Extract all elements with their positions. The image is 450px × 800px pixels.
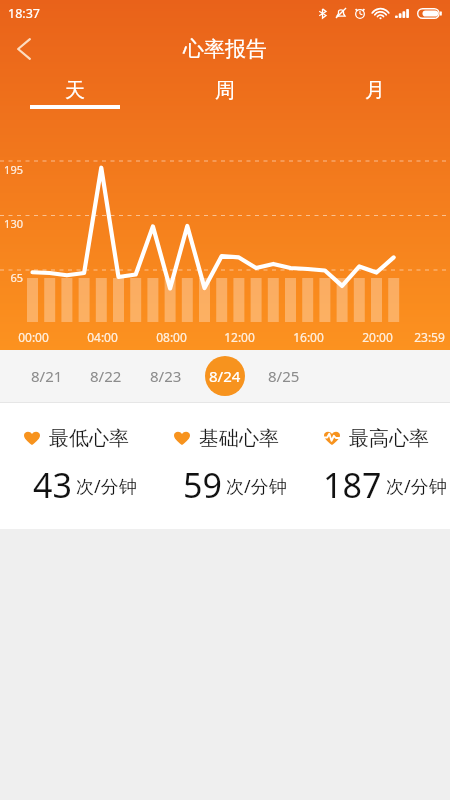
staticText: 43 — [33, 462, 72, 502]
staticText: 周 — [215, 78, 235, 103]
staticText: 16:00 — [293, 329, 324, 345]
staticText: 08:00 — [156, 329, 187, 345]
staticText: 次/分钟 — [76, 474, 137, 499]
button[interactable]: 8/22 — [86, 356, 126, 396]
staticText: 195 — [4, 162, 23, 177]
staticText: 00:00 — [18, 329, 49, 345]
staticText: 20:00 — [362, 329, 393, 345]
staticText: 8/24 — [209, 366, 241, 386]
staticText: 187 — [323, 462, 382, 502]
button[interactable]: 8/24 — [205, 356, 245, 396]
staticText: 月 — [365, 78, 385, 103]
staticText: 8/22 — [90, 366, 122, 386]
staticText: 次/分钟 — [386, 474, 447, 499]
button[interactable]: 基础心率 — [174, 425, 279, 451]
staticText: 65 — [10, 270, 23, 285]
button[interactable]: 月 — [300, 74, 450, 105]
staticText: 59 — [183, 462, 222, 502]
staticText: 8/23 — [150, 366, 182, 386]
staticText: 次/分钟 — [226, 474, 287, 499]
staticText: 130 — [4, 216, 23, 231]
button[interactable]: 最高心率 — [324, 425, 429, 451]
staticText: 18:37 — [8, 5, 40, 22]
button[interactable]: 周 — [150, 74, 300, 105]
staticText: 23:59 — [414, 329, 445, 345]
button[interactable]: Back — [0, 27, 47, 74]
staticText: 最高心率 — [349, 426, 429, 451]
button[interactable]: 最低心率 — [24, 425, 129, 451]
staticText: 天 — [65, 78, 85, 103]
staticText: 8/25 — [268, 366, 300, 386]
staticText: 基础心率 — [199, 426, 279, 451]
staticText: 最低心率 — [49, 426, 129, 451]
button[interactable]: 8/21 — [27, 356, 67, 396]
staticText: 心率报告 — [183, 36, 267, 62]
button[interactable]: 天 — [0, 74, 150, 109]
button[interactable]: 8/25 — [264, 356, 304, 396]
staticText: 8/21 — [31, 366, 63, 386]
button[interactable]: 8/23 — [146, 356, 186, 396]
staticText: 12:00 — [224, 329, 255, 345]
staticText: 04:00 — [87, 329, 118, 345]
